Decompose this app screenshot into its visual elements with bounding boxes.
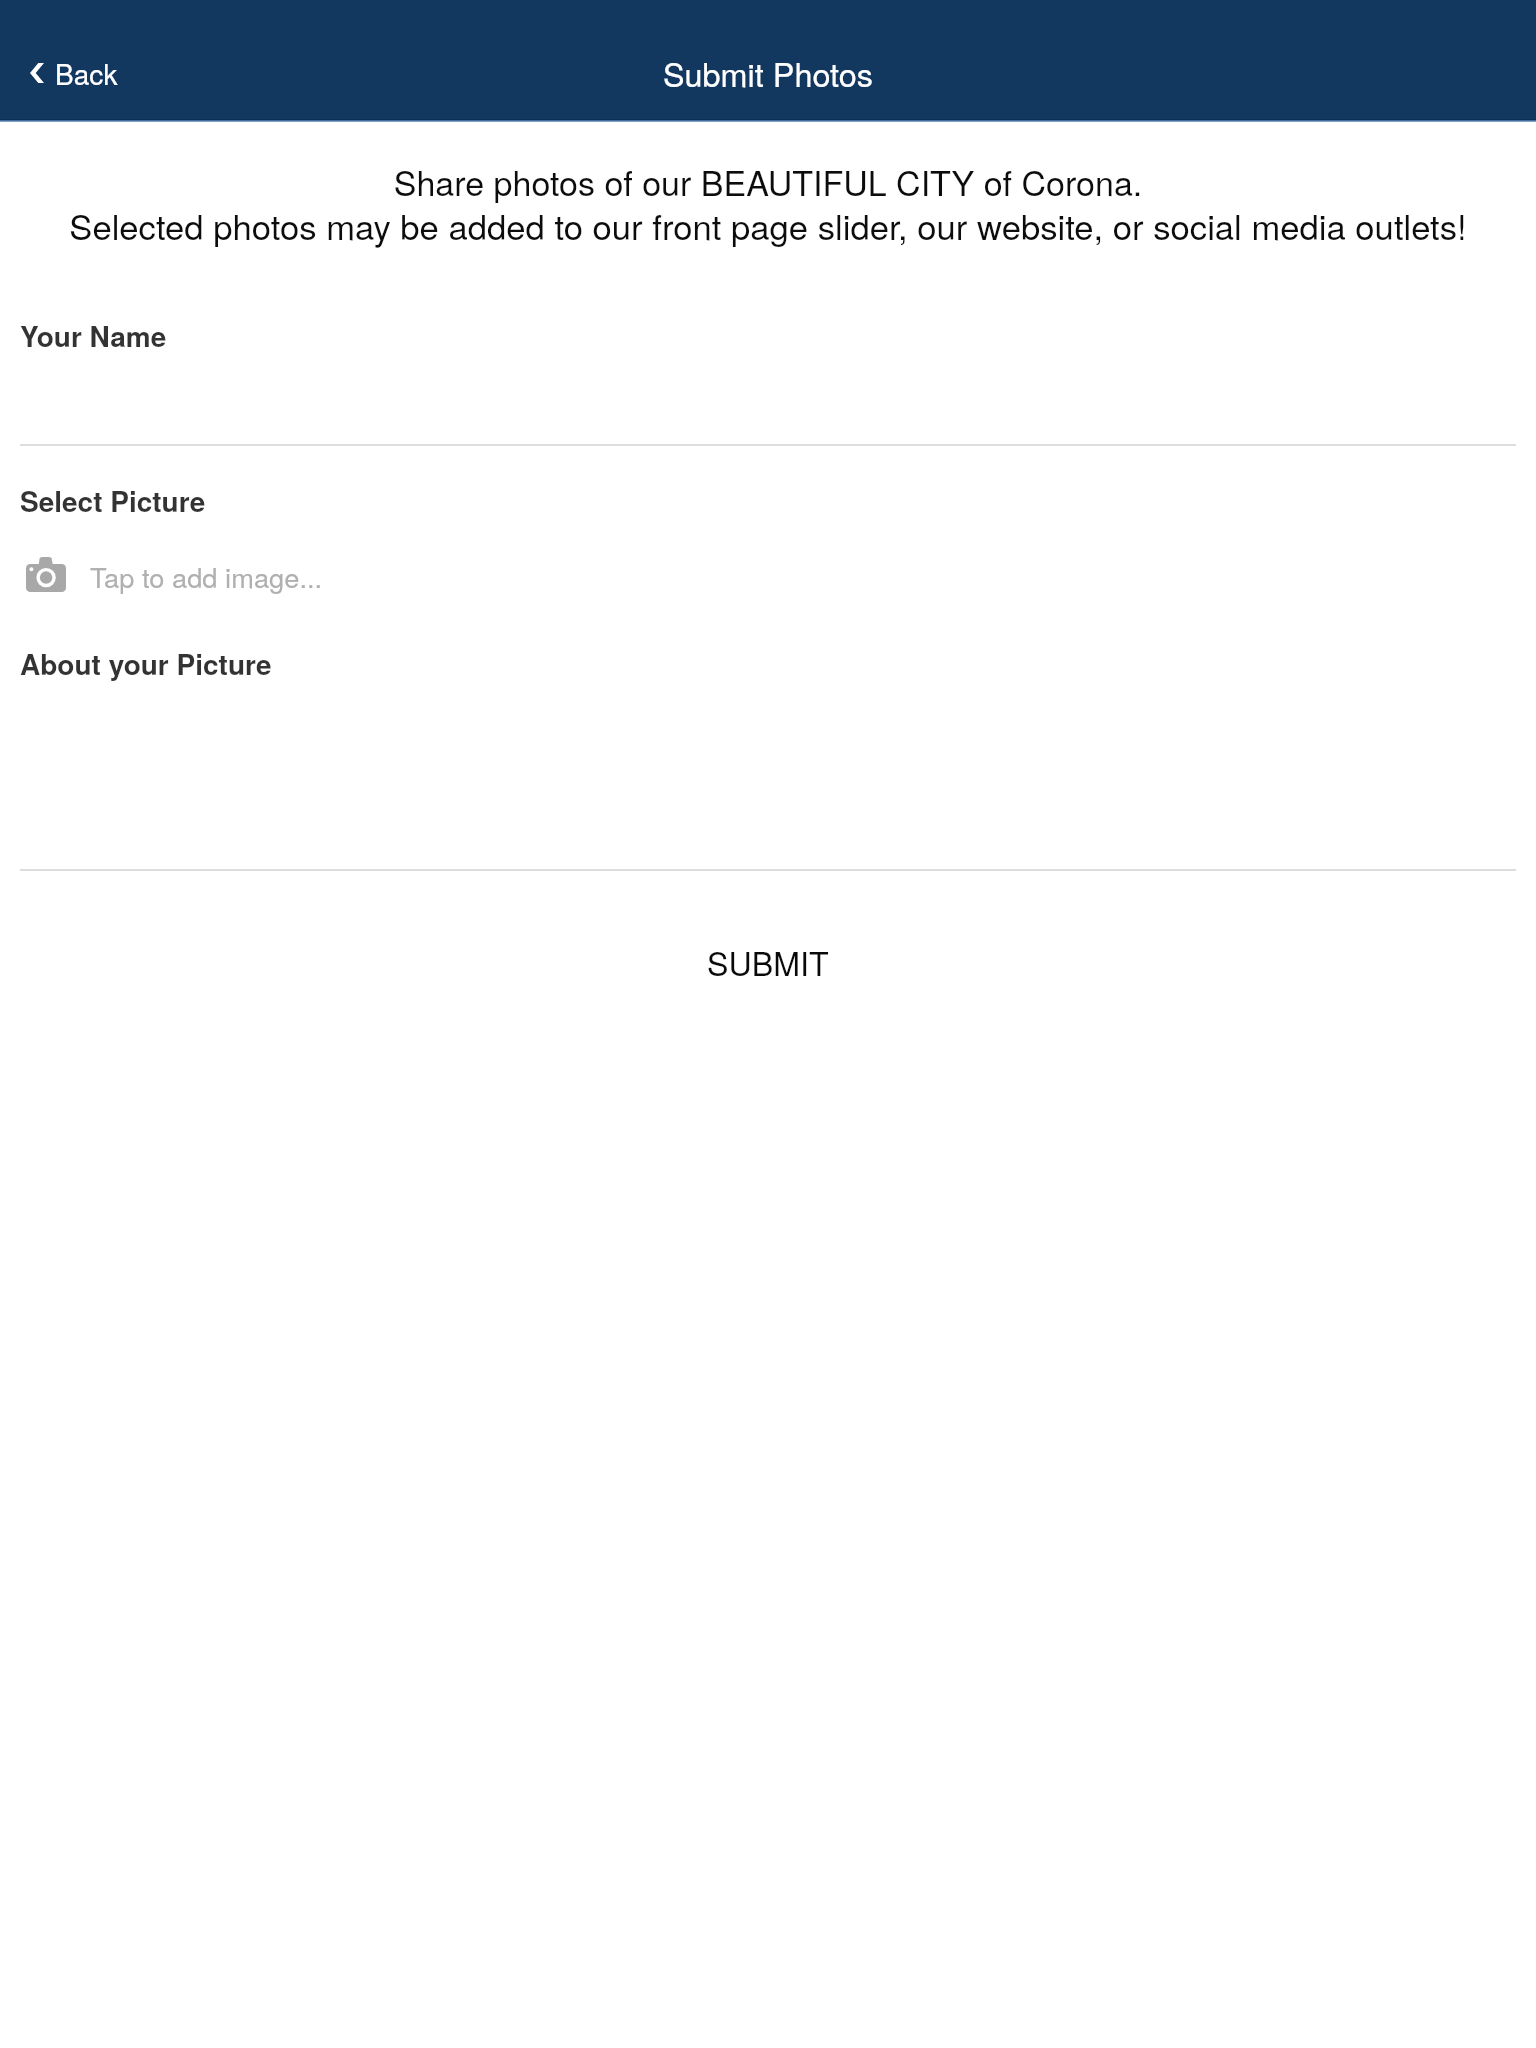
staticText: Select Picture (20, 480, 206, 520)
button[interactable]: SUBMIT (0, 898, 1536, 1026)
other: Add image (26, 557, 66, 592)
staticText: Your Name (20, 315, 167, 355)
staticText: About your Picture (20, 643, 272, 683)
staticText: Tap to add image... (90, 557, 323, 596)
staticText: Selected photos may be added to our fron… (0, 200, 1536, 250)
staticText: Submit Photos (663, 50, 873, 96)
staticText: Share photos of our BEAUTIFUL CITY of Co… (0, 157, 1536, 206)
staticText: SUBMIT (707, 939, 829, 985)
button[interactable]: Back (0, 47, 140, 99)
button[interactable]: Add image (0, 543, 1536, 605)
staticText: Back (55, 53, 118, 93)
